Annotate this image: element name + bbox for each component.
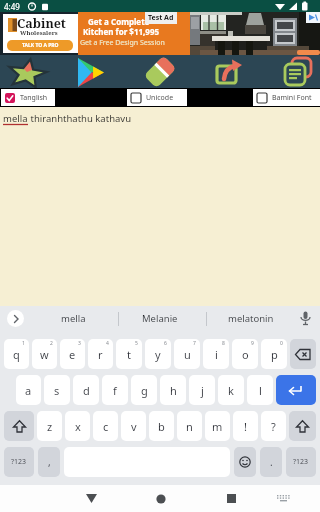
button[interactable]: j [189, 375, 215, 405]
button[interactable] [75, 485, 107, 512]
staticText: 8 [222, 340, 225, 347]
staticText: melatonin [228, 312, 274, 325]
button[interactable]: f [102, 375, 128, 405]
staticText: w [40, 347, 49, 362]
button[interactable]: h [160, 375, 186, 405]
button[interactable]: g [131, 375, 157, 405]
button[interactable]: u [174, 339, 200, 369]
button[interactable]: Melanie [122, 306, 197, 331]
staticText: Melanie [142, 312, 178, 325]
button[interactable]: Bamini Font [253, 89, 320, 106]
staticText: 3 [78, 340, 81, 347]
button[interactable]: v [121, 411, 146, 441]
staticText: i [215, 347, 218, 362]
staticText: . [270, 455, 273, 469]
staticText: Tanglish [20, 93, 48, 103]
staticText: 9 [251, 340, 254, 347]
staticText: r [98, 347, 103, 362]
button[interactable] [6, 56, 38, 88]
staticText: p [271, 347, 278, 362]
button[interactable]: ! [233, 411, 258, 441]
staticText: 4 [106, 340, 109, 347]
button[interactable]: ?123 [4, 447, 34, 477]
staticText: q [13, 347, 20, 362]
staticText: thiranhthathu kathavu [28, 112, 132, 125]
staticText: Test Ad [148, 13, 174, 23]
staticText: h [170, 383, 177, 398]
staticText: 0 [280, 340, 283, 347]
button[interactable] [144, 56, 176, 88]
button[interactable]: z [37, 411, 62, 441]
button[interactable]: b [149, 411, 174, 441]
staticText: mella [3, 112, 28, 125]
button[interactable]: o [232, 339, 258, 369]
staticText: 1 [22, 340, 25, 347]
staticText: u [184, 347, 191, 362]
button[interactable]: s [44, 375, 70, 405]
button[interactable]: l [247, 375, 273, 405]
button[interactable]: d [73, 375, 99, 405]
staticText: Get a Free Design Session [80, 38, 165, 48]
button[interactable]: ? [261, 411, 286, 441]
staticText: Kitchen for $11,995 [83, 26, 160, 37]
button[interactable] [282, 56, 314, 88]
button[interactable]: r [88, 339, 113, 369]
staticText: a [25, 383, 32, 398]
button[interactable] [276, 375, 316, 405]
staticText: m [212, 419, 223, 434]
button[interactable]: m [205, 411, 230, 441]
button[interactable]: c [93, 411, 118, 441]
button[interactable] [145, 485, 177, 512]
staticText: z [47, 419, 53, 434]
button[interactable]: ?123 [286, 447, 316, 477]
button[interactable] [289, 411, 316, 441]
button[interactable]: w [32, 339, 57, 369]
staticText: ? [271, 419, 276, 434]
button[interactable]: i [203, 339, 229, 369]
staticText: 7 [193, 340, 196, 347]
staticText: Bamini Font [272, 93, 312, 103]
button[interactable]: melatonin [212, 306, 290, 331]
button[interactable] [215, 485, 247, 512]
staticText: f [113, 383, 117, 398]
button[interactable]: Tanglish [1, 89, 55, 106]
staticText: Wholesalers [20, 29, 58, 37]
button[interactable]: mella [0, 107, 320, 306]
button[interactable]: a [16, 375, 41, 405]
button[interactable]: t [116, 339, 142, 369]
button[interactable]: y [145, 339, 171, 369]
button[interactable]: TALK TO A PRO [7, 40, 73, 51]
button[interactable]: Unicode [127, 89, 187, 106]
button[interactable]: x [65, 411, 90, 441]
staticText: 6 [164, 340, 167, 347]
button[interactable] [7, 310, 24, 327]
button[interactable] [75, 56, 107, 88]
button[interactable]: n [177, 411, 202, 441]
button[interactable]: k [218, 375, 244, 405]
button[interactable]: q [4, 339, 29, 369]
staticText: v [131, 419, 137, 434]
button[interactable]: p [261, 339, 287, 369]
button[interactable]: . [260, 447, 282, 477]
button[interactable] [234, 447, 256, 477]
button[interactable] [290, 339, 316, 369]
staticText: Unicode [146, 93, 174, 103]
staticText: mella [61, 312, 86, 325]
staticText: ! [244, 419, 247, 434]
button[interactable]: Cabinet [0, 12, 320, 55]
button[interactable] [213, 56, 245, 88]
button[interactable]: , [38, 447, 60, 477]
button[interactable] [4, 411, 34, 441]
staticText: s [54, 383, 60, 398]
staticText: 4:49 [4, 1, 20, 12]
staticText: n [186, 419, 193, 434]
button[interactable] [268, 485, 298, 512]
staticText: , [48, 455, 51, 469]
staticText: l [259, 383, 262, 398]
staticText: d [83, 383, 90, 398]
button[interactable]: mella [40, 306, 106, 331]
staticText: b [158, 419, 165, 434]
staticText: e [69, 347, 76, 362]
button[interactable]: e [60, 339, 85, 369]
